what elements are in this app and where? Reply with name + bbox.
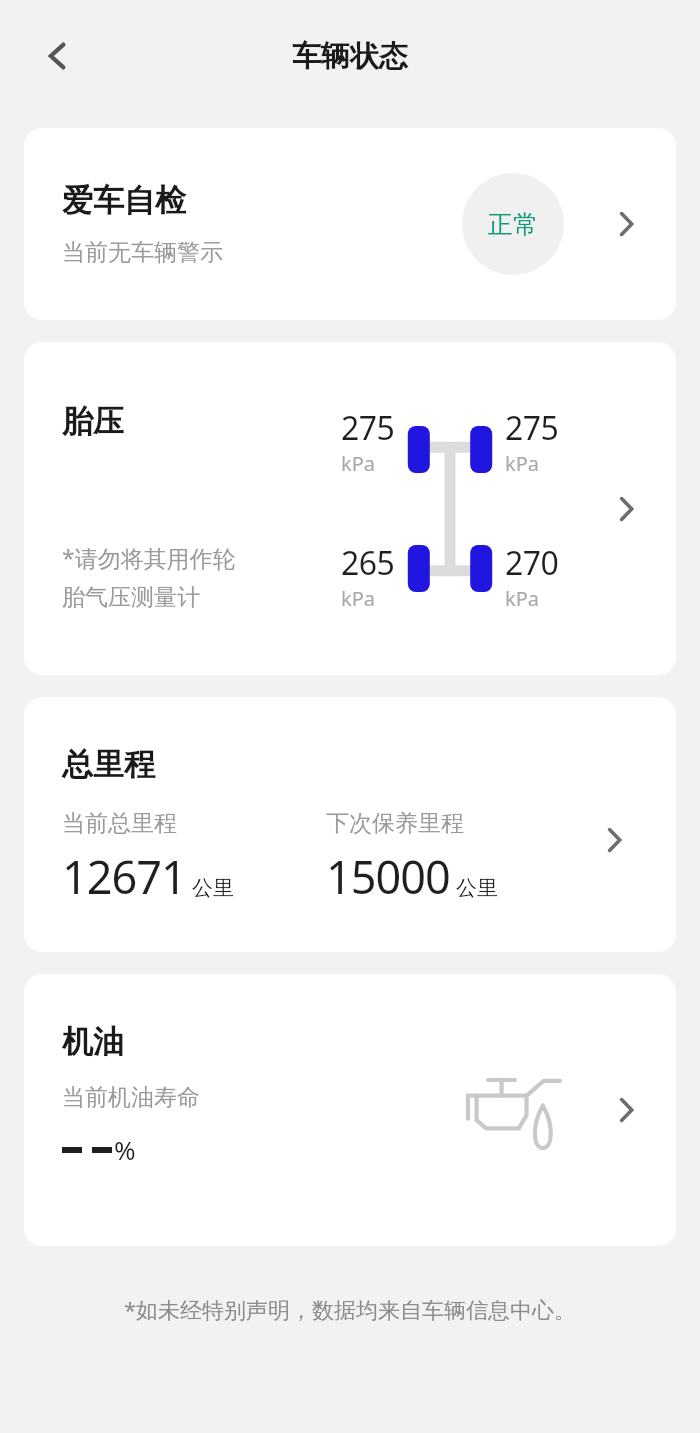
staticText: 12671 bbox=[62, 846, 186, 907]
staticText: 当前无车辆警示 bbox=[62, 238, 223, 267]
staticText: 275 bbox=[505, 406, 559, 450]
staticText: 公里 bbox=[456, 875, 498, 901]
staticText: 正常 bbox=[488, 209, 538, 240]
button[interactable]: Open details bbox=[600, 198, 652, 250]
button[interactable]: 胎压 bbox=[24, 342, 676, 675]
staticText: 公里 bbox=[192, 875, 234, 901]
staticText: 15000 bbox=[326, 846, 450, 907]
button[interactable]: Open details bbox=[600, 1084, 652, 1136]
staticText: 270 bbox=[505, 541, 559, 585]
staticText: 当前机油寿命 bbox=[62, 1083, 200, 1112]
button[interactable]: 总里程 bbox=[24, 697, 676, 952]
staticText: kPa bbox=[505, 450, 539, 477]
staticText: 总里程 bbox=[62, 745, 155, 784]
staticText: 车辆状态 bbox=[292, 38, 408, 75]
staticText: 胎气压测量计 bbox=[62, 583, 200, 612]
button[interactable]: Back bbox=[30, 28, 86, 84]
button[interactable]: 机油 bbox=[24, 974, 676, 1246]
staticText: 当前总里程 bbox=[62, 809, 177, 838]
staticText: % bbox=[114, 1132, 136, 1167]
staticText: 机油 bbox=[62, 1022, 124, 1061]
staticText: 275 bbox=[341, 406, 395, 450]
button[interactable]: Open details bbox=[588, 814, 640, 866]
button[interactable]: 爱车自检 bbox=[24, 128, 676, 320]
staticText: *如未经特别声明，数据均来自车辆信息中心。 bbox=[0, 1294, 700, 1324]
staticText: kPa bbox=[341, 450, 375, 477]
staticText: 爱车自检 bbox=[62, 181, 186, 220]
staticText: kPa bbox=[505, 585, 539, 612]
staticText: 胎压 bbox=[62, 402, 124, 441]
button[interactable]: Open details bbox=[600, 483, 652, 535]
staticText: 下次保养里程 bbox=[326, 809, 464, 838]
staticText: 265 bbox=[341, 541, 395, 585]
staticText: *请勿将其用作轮 bbox=[62, 542, 236, 573]
staticText: kPa bbox=[341, 585, 375, 612]
